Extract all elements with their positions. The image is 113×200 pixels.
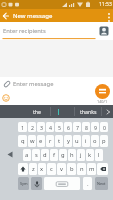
button[interactable]: g: [59, 149, 67, 161]
button[interactable]: [44, 177, 80, 190]
button[interactable]: 9: [91, 122, 99, 132]
button[interactable]: e: [37, 135, 45, 147]
button[interactable]: [99, 26, 109, 36]
staticText: New message: [13, 12, 53, 20]
staticText: s: [35, 151, 38, 159]
button[interactable]: i: [82, 135, 90, 147]
staticText: h: [70, 151, 74, 159]
staticText: m: [89, 165, 95, 173]
button[interactable]: [97, 163, 108, 175]
staticText: c: [50, 165, 53, 173]
button[interactable]: a: [23, 149, 31, 161]
button[interactable]: o: [91, 135, 99, 147]
staticText: y: [67, 137, 70, 145]
button[interactable]: r: [46, 135, 54, 147]
button[interactable]: u: [73, 135, 81, 147]
button[interactable]: k: [86, 149, 94, 161]
button[interactable]: [6, 150, 15, 159]
staticText: Next: [97, 181, 106, 186]
staticText: v: [60, 165, 63, 173]
button[interactable]: 1: [18, 122, 27, 132]
staticText: w: [30, 137, 35, 145]
button[interactable]: f: [50, 149, 58, 161]
staticText: p: [102, 137, 106, 145]
staticText: x: [40, 165, 44, 173]
staticText: d: [43, 151, 47, 159]
staticText: g: [61, 151, 65, 159]
button[interactable]: m: [87, 163, 96, 175]
button[interactable]: the: [24, 105, 50, 118]
staticText: 3: [40, 124, 43, 131]
button[interactable]: [18, 163, 28, 175]
staticText: n: [80, 165, 84, 173]
button[interactable]: Enter message: [3, 80, 54, 88]
button[interactable]: [31, 177, 42, 190]
button[interactable]: w: [28, 135, 36, 147]
button[interactable]: 3: [37, 122, 45, 132]
button[interactable]: x: [38, 163, 46, 175]
button[interactable]: thanks: [75, 105, 101, 118]
button[interactable]: Sym: [18, 177, 29, 190]
button[interactable]: n: [77, 163, 86, 175]
staticText: t: [58, 137, 61, 145]
button[interactable]: [51, 105, 74, 118]
button[interactable]: Enter recipients: [0, 22, 113, 40]
staticText: 9: [94, 124, 97, 131]
button[interactable]: Next: [95, 177, 108, 190]
staticText: Enter message: [13, 80, 54, 88]
button[interactable]: [103, 11, 113, 21]
button[interactable]: [102, 105, 113, 118]
staticText: o: [93, 137, 97, 145]
staticText: b: [70, 165, 74, 173]
button[interactable]: 2: [28, 122, 36, 132]
staticText: 6: [67, 124, 70, 131]
staticText: thanks: [80, 108, 97, 115]
button[interactable]: [95, 84, 110, 99]
button[interactable]: d: [41, 149, 49, 161]
staticText: r: [49, 137, 52, 145]
staticText: 1: [21, 124, 24, 131]
button[interactable]: New message: [0, 10, 53, 22]
button[interactable]: 5: [55, 122, 63, 132]
button[interactable]: t: [55, 135, 63, 147]
button[interactable]: y: [64, 135, 72, 147]
button[interactable]: s: [32, 149, 40, 161]
button[interactable]: z: [29, 163, 37, 175]
staticText: 5: [58, 124, 61, 131]
staticText: 4: [49, 124, 52, 131]
button[interactable]: b: [67, 163, 76, 175]
button[interactable]: 8: [82, 122, 90, 132]
button[interactable]: v: [57, 163, 66, 175]
button[interactable]: [2, 94, 10, 102]
button[interactable]: c: [47, 163, 56, 175]
button[interactable]: l: [95, 149, 103, 161]
staticText: z: [32, 165, 35, 173]
staticText: k: [88, 151, 92, 159]
staticText: 140/1: [97, 99, 108, 104]
staticText: l: [98, 151, 100, 159]
staticText: q: [21, 137, 25, 145]
button[interactable]: 0: [100, 122, 108, 132]
staticText: the: [33, 108, 42, 115]
staticText: 2: [31, 124, 34, 131]
staticText: j: [80, 151, 82, 159]
staticText: f: [53, 151, 55, 159]
staticText: i: [85, 137, 87, 145]
button[interactable]: q: [18, 135, 27, 147]
staticText: e: [39, 137, 43, 145]
button[interactable]: 7: [73, 122, 81, 132]
button[interactable]: 6: [64, 122, 72, 132]
staticText: 0: [103, 124, 106, 131]
button[interactable]: .: [83, 177, 92, 190]
staticText: .: [87, 180, 89, 188]
button[interactable]: 4: [46, 122, 54, 132]
staticText: 8: [85, 124, 88, 131]
staticText: Enter recipients: [3, 27, 46, 35]
button[interactable]: p: [100, 135, 108, 147]
staticText: 11:53: [99, 1, 112, 8]
button[interactable]: h: [68, 149, 76, 161]
staticText: Sym: [20, 181, 28, 186]
staticText: a: [25, 151, 29, 159]
staticText: 7: [76, 124, 79, 131]
button[interactable]: j: [77, 149, 85, 161]
